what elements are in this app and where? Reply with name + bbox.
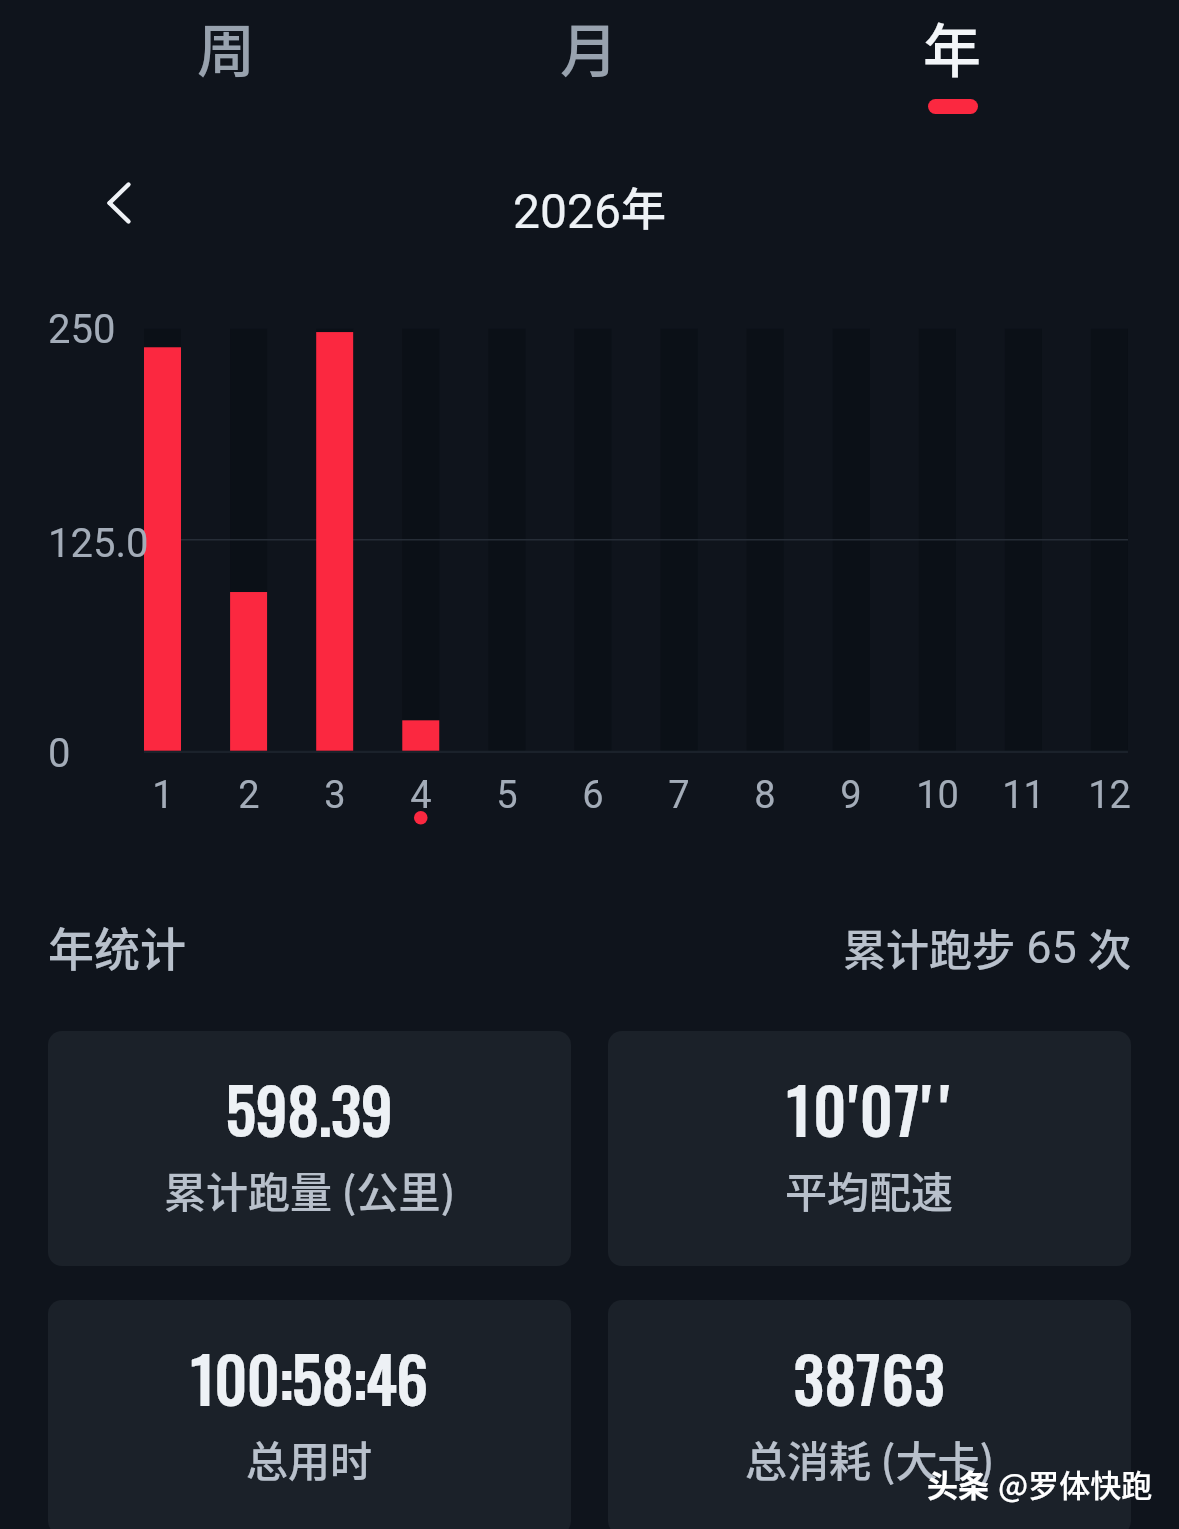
button[interactable]: 38763 — [608, 1300, 1131, 1529]
staticText: 2026 — [513, 183, 621, 239]
staticText: 年 — [621, 174, 667, 239]
button[interactable]: 10'07' ' — [608, 1031, 1131, 1266]
staticText: 累计跑步 — [843, 916, 1015, 978]
staticText: 125.0 — [48, 520, 149, 567]
button[interactable]: 周 — [45, 0, 408, 124]
staticText: 累计跑量 (公里) — [164, 1159, 456, 1220]
staticText: 100:58:46 — [191, 1331, 429, 1423]
staticText: 周 — [197, 5, 256, 89]
button[interactable]: 598.39 — [48, 1031, 571, 1266]
staticText: 65 — [1015, 921, 1088, 974]
staticText: 2 — [238, 773, 260, 818]
staticText: 总用时 — [246, 1428, 373, 1489]
staticText: 年统计 — [48, 913, 186, 980]
staticText: 头条 — [927, 1461, 989, 1506]
staticText: 6 — [582, 773, 604, 818]
staticText: 11 — [1002, 773, 1045, 818]
staticText: 4 — [410, 773, 432, 818]
staticText: 5 — [496, 773, 518, 818]
staticText: 10'07' ' — [787, 1062, 952, 1154]
staticText: 月 — [560, 5, 619, 89]
staticText: 38763 — [794, 1331, 946, 1423]
staticText: 10 — [916, 773, 959, 818]
staticText: 总消耗 (大卡) — [745, 1428, 995, 1489]
staticText: 12 — [1088, 773, 1131, 818]
staticText: 1 — [152, 773, 174, 818]
staticText: 8 — [754, 773, 776, 818]
button[interactable]: 100:58:46 — [48, 1300, 571, 1529]
staticText: 7 — [668, 773, 690, 818]
staticText: 9 — [840, 773, 862, 818]
staticText: 3 — [324, 773, 346, 818]
button[interactable]: 月 — [408, 0, 771, 124]
staticText: 0 — [48, 730, 71, 777]
staticText: 年 — [923, 5, 982, 89]
button[interactable]: Previous year — [88, 172, 150, 234]
staticText: 250 — [48, 306, 116, 353]
staticText: 平均配速 — [785, 1159, 954, 1220]
staticText: @罗体快跑 — [998, 1461, 1153, 1506]
staticText: 598.39 — [226, 1062, 393, 1154]
button[interactable]: 年 — [771, 0, 1134, 124]
staticText: 次 — [1088, 916, 1131, 978]
